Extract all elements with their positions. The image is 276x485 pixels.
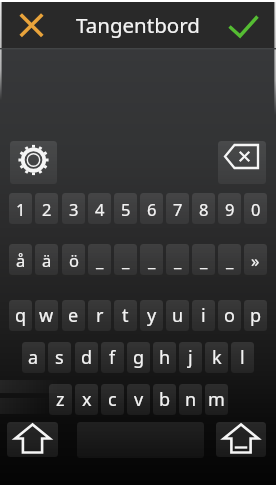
button[interactable]: 6: [140, 193, 163, 224]
staticText: f: [109, 345, 116, 370]
button[interactable]: å: [9, 244, 32, 275]
staticText: 9: [225, 198, 235, 220]
button[interactable]: j: [179, 342, 202, 373]
staticText: d: [81, 345, 93, 370]
staticText: u: [172, 303, 184, 328]
staticText: 6: [147, 198, 157, 220]
button[interactable]: 3: [62, 193, 85, 224]
button[interactable]: c: [101, 384, 124, 415]
button[interactable]: _: [88, 244, 111, 275]
button[interactable]: a: [22, 342, 45, 373]
staticText: k: [212, 345, 222, 370]
button[interactable]: »: [244, 244, 267, 275]
staticText: x: [82, 387, 92, 412]
button[interactable]: l: [231, 342, 254, 373]
button[interactable]: d: [75, 342, 98, 373]
button[interactable]: g: [127, 342, 150, 373]
staticText: 3: [69, 198, 79, 220]
staticText: r: [96, 303, 104, 328]
button[interactable]: 4: [88, 193, 111, 224]
button[interactable]: [10, 141, 57, 184]
staticText: n: [185, 387, 197, 412]
staticText: p: [250, 303, 262, 328]
button[interactable]: 7: [166, 193, 189, 224]
staticText: a: [28, 345, 39, 370]
button[interactable]: m: [205, 384, 228, 415]
button[interactable]: r: [88, 300, 111, 331]
button[interactable]: o: [218, 300, 241, 331]
button[interactable]: _: [140, 244, 163, 275]
button[interactable]: k: [205, 342, 228, 373]
staticText: 4: [95, 198, 105, 220]
staticText: i: [201, 303, 206, 328]
staticText: c: [108, 387, 117, 412]
staticText: y: [147, 303, 157, 328]
staticText: q: [15, 303, 27, 328]
staticText: 5: [121, 198, 131, 220]
button[interactable]: x: [75, 384, 98, 415]
button[interactable]: [7, 422, 58, 457]
button[interactable]: t: [114, 300, 137, 331]
button[interactable]: [218, 141, 266, 184]
staticText: _: [226, 249, 234, 271]
button[interactable]: 5: [114, 193, 137, 224]
button[interactable]: w: [35, 300, 58, 331]
button[interactable]: f: [101, 342, 124, 373]
staticText: 8: [199, 198, 209, 220]
button[interactable]: u: [166, 300, 189, 331]
staticText: 7: [173, 198, 183, 220]
button[interactable]: y: [140, 300, 163, 331]
staticText: 2: [42, 198, 52, 220]
button[interactable]: e: [62, 300, 85, 331]
button[interactable]: 0: [244, 193, 267, 224]
staticText: ö: [69, 249, 79, 271]
staticText: e: [68, 303, 79, 328]
staticText: o: [224, 303, 235, 328]
button[interactable]: [12, 6, 52, 46]
button[interactable]: _: [114, 244, 137, 275]
staticText: Tangentbord: [76, 11, 200, 39]
staticText: »: [251, 249, 260, 271]
staticText: w: [39, 303, 54, 328]
button[interactable]: h: [153, 342, 176, 373]
button[interactable]: v: [127, 384, 150, 415]
staticText: _: [96, 249, 104, 271]
button[interactable]: b: [153, 384, 176, 415]
staticText: _: [200, 249, 208, 271]
button[interactable]: _: [166, 244, 189, 275]
button[interactable]: [77, 422, 204, 458]
button[interactable]: _: [218, 244, 241, 275]
staticText: s: [55, 345, 64, 370]
button[interactable]: p: [244, 300, 267, 331]
staticText: h: [159, 345, 171, 370]
staticText: _: [174, 249, 182, 271]
button[interactable]: 9: [218, 193, 241, 224]
staticText: g: [133, 345, 145, 370]
button[interactable]: 8: [192, 193, 215, 224]
staticText: b: [159, 387, 171, 412]
button[interactable]: n: [179, 384, 202, 415]
button[interactable]: i: [192, 300, 215, 331]
button[interactable]: s: [48, 342, 71, 373]
button[interactable]: 1: [9, 193, 32, 224]
staticText: _: [148, 249, 156, 271]
staticText: å: [16, 249, 26, 271]
staticText: t: [122, 303, 129, 328]
button[interactable]: [223, 6, 263, 46]
staticText: v: [134, 387, 144, 412]
staticText: 1: [16, 198, 26, 220]
staticText: m: [208, 387, 225, 412]
staticText: l: [240, 345, 245, 370]
button[interactable]: ä: [35, 244, 58, 275]
button[interactable]: [216, 422, 266, 457]
staticText: j: [188, 345, 193, 370]
button[interactable]: z: [49, 384, 72, 415]
button[interactable]: ö: [62, 244, 85, 275]
staticText: 0: [251, 198, 261, 220]
button[interactable]: _: [192, 244, 215, 275]
staticText: _: [122, 249, 130, 271]
button[interactable]: q: [9, 300, 32, 331]
staticText: ä: [42, 249, 52, 271]
button[interactable]: 2: [35, 193, 58, 224]
staticText: z: [56, 387, 65, 412]
